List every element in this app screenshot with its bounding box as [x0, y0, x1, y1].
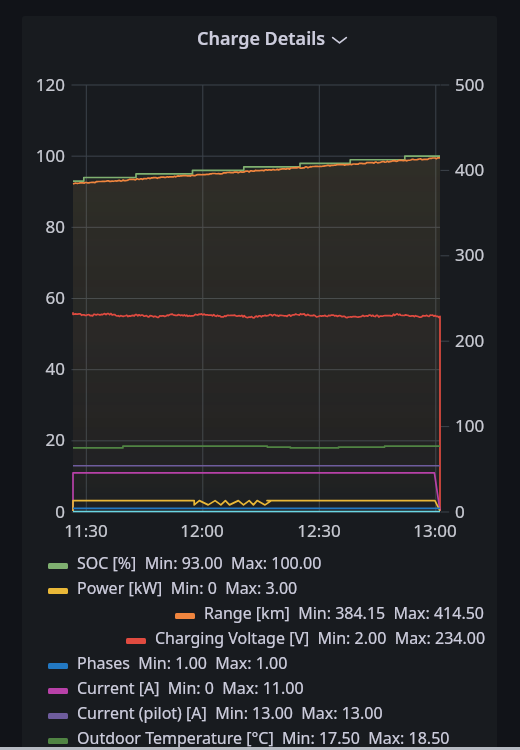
- staticText: 300: [455, 243, 485, 266]
- button[interactable]: Power [kW] Min: 0 Max: 3.00: [0, 578, 520, 603]
- staticText: Range [km] Min: 384.15 Max: 414.50: [204, 602, 484, 624]
- staticText: 100: [455, 414, 485, 437]
- staticText: 100: [0, 144, 65, 167]
- staticText: 120: [0, 73, 65, 96]
- button[interactable]: Current [A] Min: 0 Max: 11.00: [0, 678, 520, 703]
- staticText: 0: [0, 500, 65, 523]
- staticText: Outdoor Temperature [°C] Min: 17.50 Max:…: [77, 727, 450, 749]
- staticText: Current (pilot) [A] Min: 13.00 Max: 13.0…: [77, 702, 383, 724]
- staticText: SOC [%] Min: 93.00 Max: 100.00: [77, 552, 322, 574]
- staticText: Charging Voltage [V] Min: 2.00 Max: 234.…: [155, 627, 486, 649]
- button[interactable]: Charging Voltage [V] Min: 2.00 Max: 234.…: [0, 628, 520, 653]
- staticText: 500: [455, 73, 485, 96]
- staticText: 400: [455, 158, 485, 181]
- button[interactable]: Charge Details: [191, 24, 354, 53]
- button[interactable]: SOC [%] Min: 93.00 Max: 100.00: [0, 553, 520, 578]
- other: Panel menu: [331, 31, 348, 48]
- staticText: Power [kW] Min: 0 Max: 3.00: [77, 577, 298, 599]
- staticText: 13:00: [405, 519, 465, 542]
- staticText: 40: [0, 357, 65, 380]
- button[interactable]: Current (pilot) [A] Min: 13.00 Max: 13.0…: [0, 703, 520, 728]
- button[interactable]: Outdoor Temperature [°C] Min: 17.50 Max:…: [0, 728, 520, 750]
- staticText: 11:30: [56, 519, 116, 542]
- staticText: 12:00: [172, 519, 232, 542]
- staticText: 80: [0, 215, 65, 238]
- staticText: 200: [455, 329, 485, 352]
- staticText: 60: [0, 286, 65, 309]
- button[interactable]: Phases Min: 1.00 Max: 1.00: [0, 653, 520, 678]
- staticText: Current [A] Min: 0 Max: 11.00: [77, 677, 304, 699]
- staticText: Charge Details: [197, 26, 326, 51]
- staticText: 12:30: [289, 519, 349, 542]
- staticText: Phases Min: 1.00 Max: 1.00: [77, 652, 288, 674]
- staticText: 20: [0, 428, 65, 451]
- staticText: 0: [455, 500, 465, 523]
- button[interactable]: Range [km] Min: 384.15 Max: 414.50: [0, 603, 520, 628]
